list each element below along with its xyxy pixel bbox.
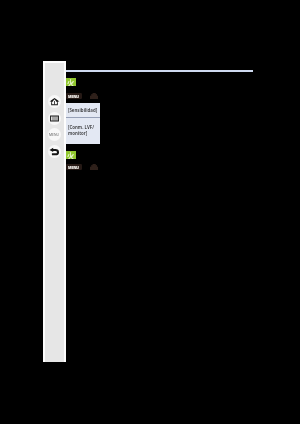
button[interactable]: Home — [48, 95, 61, 108]
button[interactable]: Contents — [48, 112, 61, 125]
button[interactable]: Back — [48, 145, 61, 158]
staticText: 火 — [67, 151, 75, 159]
staticText: [Conm. LVF/ monitor] — [68, 124, 94, 137]
button[interactable]: MENU — [66, 93, 82, 99]
staticText: MENU — [68, 165, 80, 170]
staticText: [Sensibilidad] — [68, 107, 98, 113]
button[interactable]: MENU — [66, 164, 82, 170]
button[interactable]: MENU — [48, 128, 61, 141]
staticText: 火 — [67, 78, 75, 86]
staticText: MENU — [49, 132, 60, 137]
staticText: MENU — [68, 94, 80, 99]
